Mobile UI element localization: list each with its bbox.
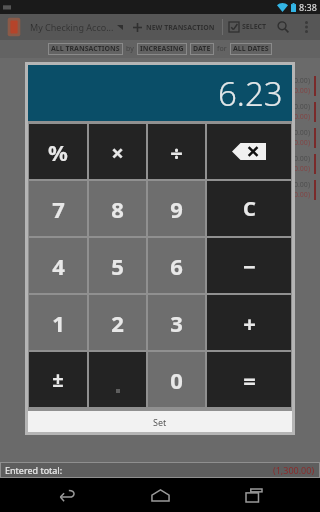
button[interactable]: % [29,124,87,179]
staticText: SELECT [242,22,267,32]
staticText: Entered total: [5,464,63,476]
staticText: by [126,44,134,54]
button[interactable]: ± [29,352,87,407]
button[interactable]: 4 [29,238,87,293]
button[interactable]: = [207,352,291,407]
button[interactable]: App icon [5,16,23,38]
staticText: (1,300.00) [278,154,310,164]
staticText: INCREASING [140,44,184,54]
button[interactable]: ALL DATES [230,43,272,55]
button[interactable]: More options [295,16,317,38]
staticText: ALL DATES [233,44,269,54]
staticText: (1,300.00) [278,190,310,200]
staticText: 9 [170,194,183,224]
staticText: 5 [111,251,124,281]
button[interactable]: 0 [148,352,205,407]
button[interactable]: 7 [29,181,87,236]
button[interactable]: Decimal point [89,352,146,407]
staticText: = [243,365,256,395]
staticText: My Checking Acco... [30,21,114,33]
staticText: for [217,44,227,54]
staticText: 4 [52,251,65,281]
staticText: 1 [52,308,65,338]
button[interactable]: 6 [148,238,205,293]
button[interactable]: 3 [148,295,205,350]
staticText: 8:38 [299,1,317,13]
staticText: (1,300.00) [278,86,310,96]
button[interactable]: Search [271,15,295,39]
button[interactable]: SELECT [229,22,267,32]
button[interactable]: × [89,124,146,179]
button[interactable]: Back [40,478,94,512]
staticText: (1,300.00) [278,112,310,122]
button[interactable]: C [207,181,291,236]
staticText: (1,300.00) [278,180,310,190]
staticText: 2 [111,308,124,338]
staticText: (1,300.00) [278,138,310,148]
staticText: % [48,137,68,167]
staticText: (1,300.00) [278,164,310,174]
button[interactable]: − [207,238,291,293]
staticText: − [243,251,256,281]
staticText: 6 [170,251,183,281]
staticText: Set [153,416,167,428]
button[interactable]: DATE [190,43,214,55]
button[interactable]: Home [133,478,187,512]
staticText: + [243,308,256,338]
staticText: DATE [193,44,211,54]
button[interactable]: Set [28,411,292,432]
staticText: 7 [52,194,65,224]
staticText: ALL TRANSACTIONS [51,44,120,54]
button[interactable]: + [207,295,291,350]
staticText: 3 [170,308,183,338]
staticText: × [111,137,124,167]
staticText: 6.23 [218,71,283,116]
button[interactable]: 1 [29,295,87,350]
staticText: (1,300.00) [278,102,310,112]
button[interactable]: 8 [89,181,146,236]
staticText: (1,300.00) [278,76,310,86]
button[interactable]: 2 [89,295,146,350]
button[interactable]: 5 [89,238,146,293]
button[interactable]: My Checking Acco... [30,21,123,33]
button[interactable]: ÷ [148,124,205,179]
button[interactable]: Recent apps [227,478,281,512]
button[interactable]: Backspace [207,124,291,179]
button[interactable]: ALL TRANSACTIONS [48,43,123,55]
staticText: 0 [170,365,183,395]
staticText: ÷ [170,137,183,167]
button[interactable]: 9 [148,181,205,236]
staticText: NEW TRANSACTION [146,23,215,33]
staticText: ± [52,366,64,393]
button[interactable]: INCREASING [137,43,187,55]
button[interactable]: NEW TRANSACTION [132,22,215,33]
staticText: FRIDAY, SEPTEMBER 13 [121,60,200,70]
staticText: 8 [111,194,124,224]
staticText: (1,300.00) [278,128,310,138]
staticText: C [243,195,256,222]
staticText: (1,300.00) [273,464,315,476]
